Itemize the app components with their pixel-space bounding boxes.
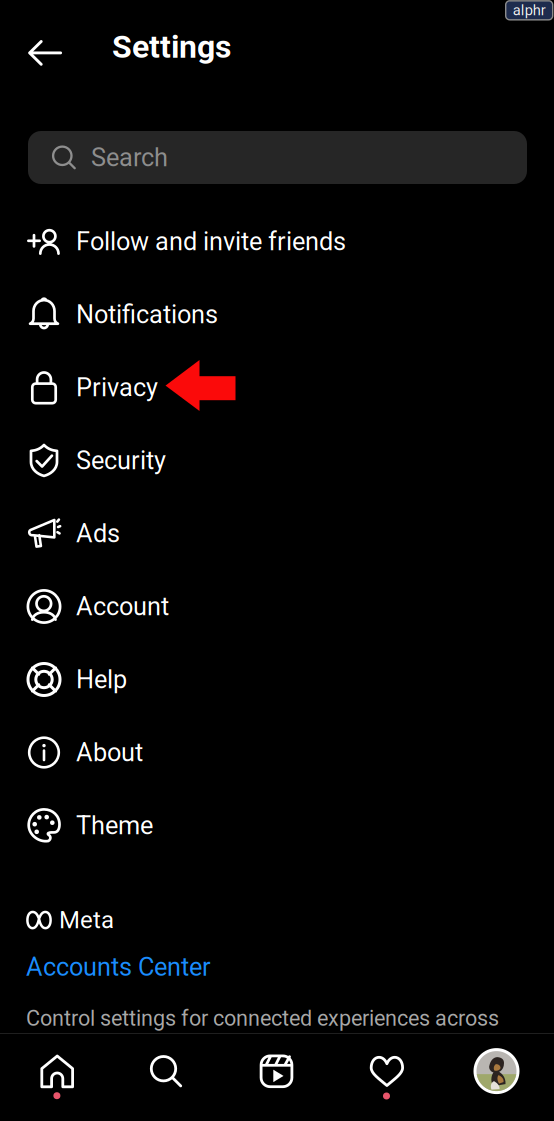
staticText: Security [76, 446, 166, 475]
button[interactable]: Privacy [0, 351, 554, 424]
button[interactable]: About [0, 716, 554, 789]
staticText: Control settings for connected experienc… [26, 1006, 499, 1031]
staticText: Settings [112, 28, 231, 65]
staticText: Search [91, 143, 168, 172]
button[interactable]: Profile [446, 1045, 546, 1097]
button[interactable]: Accounts Center [0, 952, 211, 982]
staticText: Privacy [76, 373, 158, 402]
staticText: Ads [76, 519, 120, 548]
staticText: Follow and invite friends [76, 227, 346, 256]
staticText: Account [76, 592, 169, 621]
staticText: About [76, 738, 143, 767]
button[interactable]: Search [28, 131, 527, 184]
staticText: Theme [76, 811, 153, 840]
staticText: Notifications [76, 300, 218, 329]
button[interactable]: Back [14, 28, 76, 78]
button[interactable]: Theme [0, 789, 554, 862]
button[interactable]: Ads [0, 497, 554, 570]
staticText: Meta [59, 906, 114, 934]
button[interactable]: Reels [226, 1047, 326, 1095]
button[interactable]: Activity [337, 1047, 437, 1095]
button[interactable]: Follow and invite friends [0, 205, 554, 278]
button[interactable]: Home [7, 1047, 107, 1095]
button[interactable]: Account [0, 570, 554, 643]
button[interactable]: Security [0, 424, 554, 497]
staticText: alphr [513, 2, 546, 19]
button[interactable]: Notifications [0, 278, 554, 351]
button[interactable]: Search [116, 1047, 216, 1095]
staticText: Help [76, 665, 127, 694]
button[interactable]: Help [0, 643, 554, 716]
staticText: Accounts Center [26, 952, 211, 982]
